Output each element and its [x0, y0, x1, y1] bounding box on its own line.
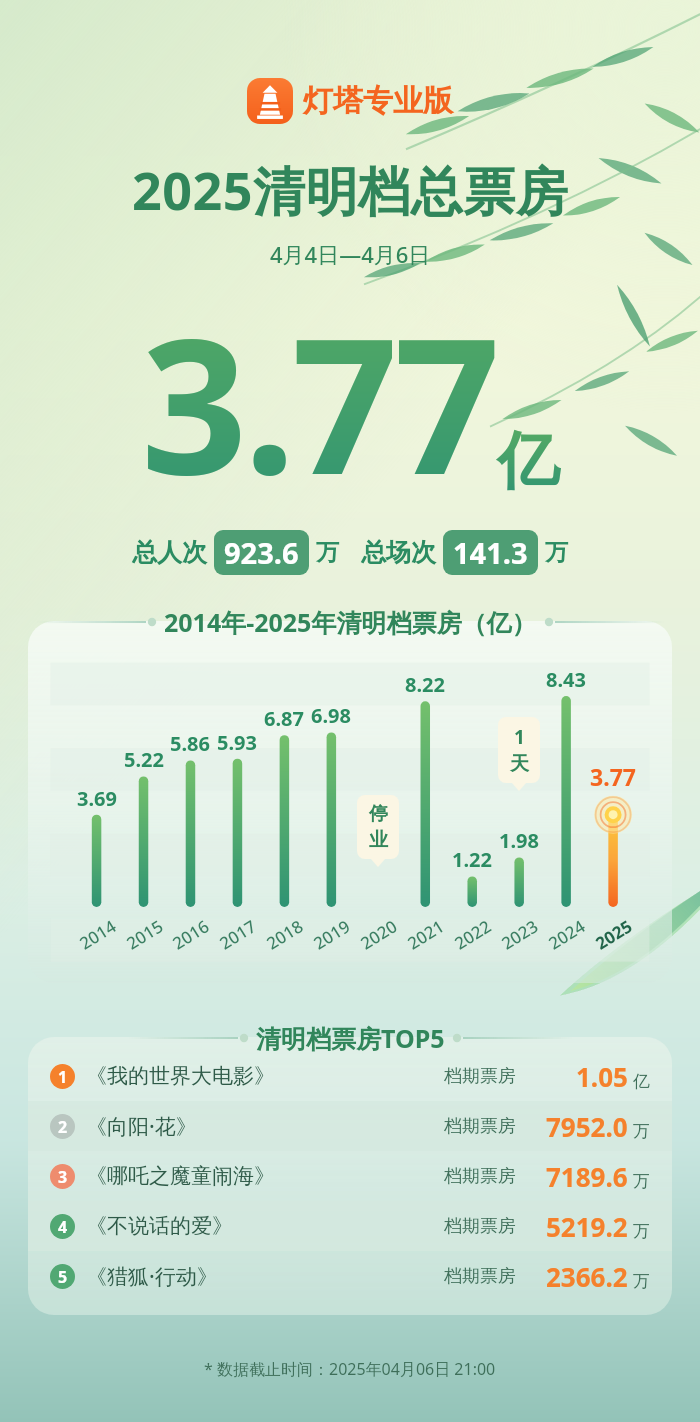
- button[interactable]: 2: [28, 1101, 672, 1151]
- staticText: 灯塔专业版: [303, 82, 453, 120]
- staticText: 1.98: [489, 827, 549, 854]
- staticText: 7952.0: [546, 1109, 628, 1144]
- staticText: 4月4日—4月6日: [270, 239, 431, 269]
- staticText: 3.69: [67, 785, 127, 812]
- staticText: 《我的世界大电影》: [86, 1063, 275, 1089]
- staticText: 4: [58, 1216, 68, 1238]
- staticText: 万: [633, 1271, 650, 1292]
- staticText: 1: [514, 724, 525, 750]
- staticText: 2025: [591, 914, 636, 955]
- button[interactable]: 1: [28, 1051, 672, 1101]
- staticText: 《猎狐·行动》: [86, 1262, 218, 1291]
- staticText: 2022: [450, 914, 495, 955]
- button[interactable]: 灯塔专业版 logo: [241, 76, 459, 126]
- staticText: 档期票房: [444, 1215, 516, 1238]
- staticText: 2019: [309, 914, 354, 955]
- staticText: 141.3: [453, 533, 528, 572]
- staticText: 万: [316, 538, 339, 567]
- staticText: 2020: [356, 914, 401, 955]
- staticText: 2017: [215, 914, 260, 955]
- staticText: 万: [633, 1171, 650, 1192]
- button[interactable]: 3: [28, 1151, 672, 1201]
- staticText: 亿: [633, 1071, 650, 1092]
- staticText: 2021: [403, 914, 448, 955]
- staticText: 2024: [544, 914, 589, 955]
- staticText: 2: [58, 1116, 68, 1138]
- staticText: 万: [633, 1221, 650, 1242]
- button[interactable]: 总人次: [132, 530, 339, 575]
- staticText: 3: [58, 1166, 68, 1188]
- staticText: 5.93: [207, 729, 267, 756]
- staticText: 8.43: [536, 666, 596, 693]
- staticText: 2015: [122, 914, 167, 955]
- staticText: 万: [545, 538, 568, 567]
- staticText: 5.22: [114, 746, 174, 773]
- staticText: 2018: [262, 914, 307, 955]
- staticText: 业: [369, 828, 388, 852]
- staticText: 清明档票房TOP5: [256, 1021, 445, 1055]
- staticText: 《哪吒之魔童闹海》: [86, 1163, 275, 1189]
- staticText: 总场次: [361, 537, 436, 568]
- staticText: 《向阳·花》: [86, 1112, 197, 1141]
- button[interactable]: 总场次: [361, 530, 568, 575]
- staticText: 5.86: [160, 730, 220, 757]
- staticText: 2014年-2025年清明档票房（亿）: [164, 605, 537, 639]
- staticText: 6.98: [301, 702, 361, 729]
- staticText: 3.77: [141, 275, 497, 528]
- staticText: 3.77: [583, 761, 643, 792]
- staticText: 档期票房: [444, 1115, 516, 1138]
- staticText: 1.05: [576, 1059, 628, 1094]
- staticText: 档期票房: [444, 1065, 516, 1088]
- staticText: 6.87: [254, 705, 314, 732]
- staticText: 2025清明档总票房: [132, 154, 568, 225]
- staticText: 2023: [497, 914, 542, 955]
- staticText: 7189.6: [546, 1159, 628, 1194]
- other: 灯塔专业版 logo: [247, 78, 293, 124]
- staticText: 停: [369, 802, 388, 826]
- staticText: 1: [58, 1066, 68, 1088]
- staticText: 8.22: [395, 671, 455, 698]
- staticText: 档期票房: [444, 1165, 516, 1188]
- staticText: 923.6: [224, 533, 299, 572]
- staticText: 2014: [75, 914, 120, 955]
- staticText: 5219.2: [546, 1209, 628, 1244]
- staticText: 档期票房: [444, 1265, 516, 1288]
- button[interactable]: 4: [28, 1201, 672, 1251]
- staticText: * 数据截止时间：2025年04月06日 21:00: [204, 1358, 496, 1380]
- button[interactable]: 3.69: [28, 621, 672, 983]
- staticText: 5: [58, 1266, 68, 1288]
- staticText: 2016: [168, 914, 213, 955]
- staticText: 《不说话的爱》: [86, 1213, 233, 1239]
- staticText: 天: [510, 752, 529, 776]
- staticText: 万: [633, 1121, 650, 1142]
- staticText: 总人次: [132, 537, 207, 568]
- staticText: 1.22: [442, 846, 502, 873]
- staticText: 亿: [497, 422, 559, 500]
- staticText: 2366.2: [546, 1259, 628, 1294]
- button[interactable]: 5: [28, 1251, 672, 1301]
